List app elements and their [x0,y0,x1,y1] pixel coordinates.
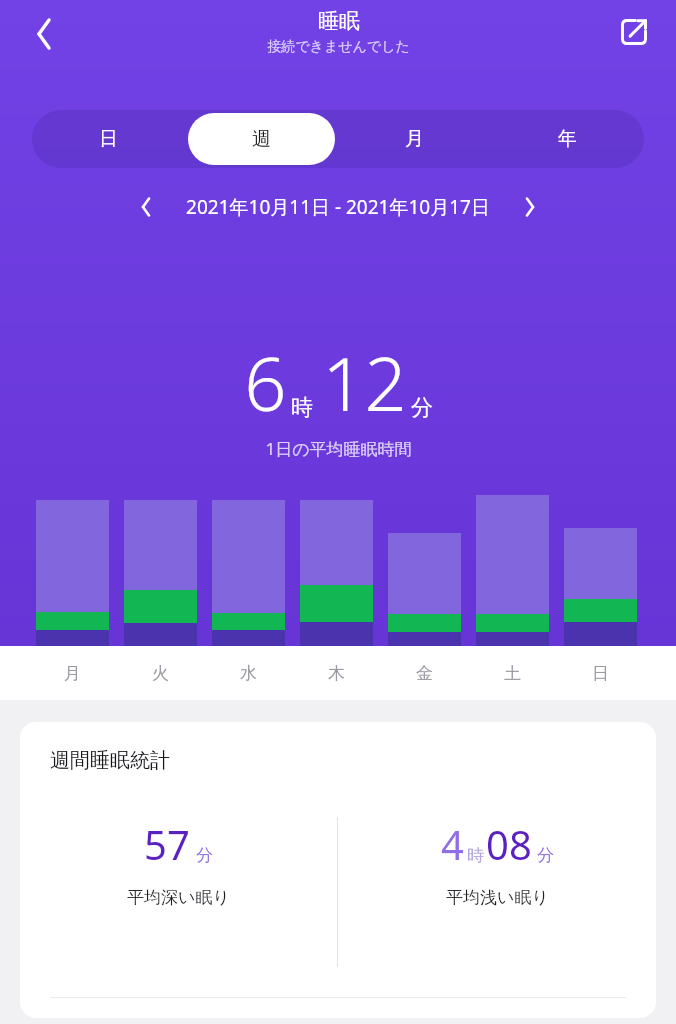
button[interactable]: 年 [494,113,641,165]
button[interactable]: 日 [35,113,182,165]
button[interactable]: 月 [341,113,488,165]
staticText: 2021年10月11日 - 2021年10月17日 [186,194,490,220]
staticText: 火 [152,663,169,684]
staticText: 月 [64,663,81,684]
staticText: 月 [405,127,424,151]
staticText: 土 [504,663,521,684]
staticText: 水 [240,663,257,684]
button[interactable]: Share [606,4,662,60]
staticText: 木 [328,663,345,684]
staticText: 6 [244,332,287,433]
button[interactable]: 57 [20,817,337,967]
staticText: 時 [467,845,484,866]
staticText: 金 [416,663,433,684]
staticText: 平均深い眠り [127,887,230,908]
staticText: 睡眠 [318,8,360,34]
staticText: 平均浅い眠り [446,887,549,908]
button[interactable]: Next week [508,185,552,229]
staticText: 08 [486,817,532,871]
staticText: 4 [441,817,464,871]
button[interactable]: 週間睡眠統計 [20,722,656,1018]
staticText: 週 [252,127,271,151]
button[interactable]: Previous week [124,185,168,229]
staticText: 分 [537,845,554,866]
staticText: 接続できませんでした [267,38,410,56]
staticText: 日 [99,127,118,151]
staticText: 57 [144,817,190,871]
staticText: 12 [322,332,407,433]
staticText: 日 [592,663,609,684]
staticText: 分 [411,394,433,422]
staticText: 週間睡眠統計 [50,748,170,773]
staticText: 分 [196,845,213,866]
staticText: 1日の平均睡眠時間 [265,437,412,460]
button[interactable]: 4 [338,817,656,967]
staticText: 時 [291,394,313,422]
staticText: 年 [558,127,577,151]
button[interactable]: Back [16,6,72,62]
button[interactable]: 週 [188,113,335,165]
